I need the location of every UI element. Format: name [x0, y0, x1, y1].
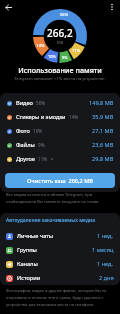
staticText: Истории: [17, 274, 41, 282]
staticText: 149,8 MB: [89, 99, 114, 107]
button[interactable]: Другое: [0, 152, 120, 166]
button[interactable]: Каналы: [0, 257, 120, 271]
staticText: 14%: [69, 114, 79, 120]
staticText: 27,1 MB: [92, 127, 114, 135]
staticText: 56%: [36, 100, 46, 106]
button[interactable]: Видео: [0, 96, 120, 110]
staticText: Группы: [17, 246, 37, 254]
staticText: Стикеры и эмодзи: [16, 113, 66, 121]
staticText: Использование памяти: [0, 65, 120, 75]
staticText: Файлы: [16, 141, 35, 149]
staticText: 35,9 MB: [92, 113, 114, 121]
button[interactable]: Файлы: [0, 138, 120, 152]
staticText: 1 нед.: [97, 260, 114, 268]
staticText: MB: [57, 40, 64, 45]
staticText: Очистить кэш 266,2 MB: [27, 177, 94, 185]
staticText: 2 дня: [99, 274, 114, 282]
staticText: Фото: [16, 127, 30, 135]
staticText: 9%: [38, 142, 45, 148]
staticText: Видео: [16, 99, 33, 107]
staticText: 1 месяц: [92, 246, 114, 254]
button[interactable]: Истории: [0, 271, 120, 285]
button[interactable]: More options: [105, 0, 119, 14]
staticText: Каналы: [17, 260, 38, 268]
staticText: 11%: [38, 156, 48, 162]
staticText: Автоудаление закачиваемых медиа: [6, 217, 95, 224]
staticText: Все медиа останется в облаке Telegram, п…: [6, 192, 115, 205]
staticText: 23,6 MB: [92, 141, 114, 149]
button[interactable]: Фото: [0, 124, 120, 138]
staticText: 29,8 MB: [92, 155, 114, 163]
button[interactable]: Группы: [0, 243, 120, 257]
button[interactable]: Очистить кэш 266,2 MB: [5, 173, 115, 188]
staticText: 266,2: [47, 26, 73, 40]
staticText: Фотографии, видео и другие файлы, которы…: [6, 288, 115, 308]
staticText: 1 нед.: [97, 232, 114, 240]
button[interactable]: Стикеры и эмодзи: [0, 110, 120, 124]
staticText: 10%: [33, 128, 43, 134]
staticText: Telegram занимает <1% места на устройств…: [0, 76, 120, 82]
button[interactable]: Back: [1, 0, 15, 14]
button[interactable]: Личные чаты: [0, 229, 120, 243]
staticText: Другое: [16, 155, 35, 163]
staticText: Личные чаты: [17, 232, 54, 240]
